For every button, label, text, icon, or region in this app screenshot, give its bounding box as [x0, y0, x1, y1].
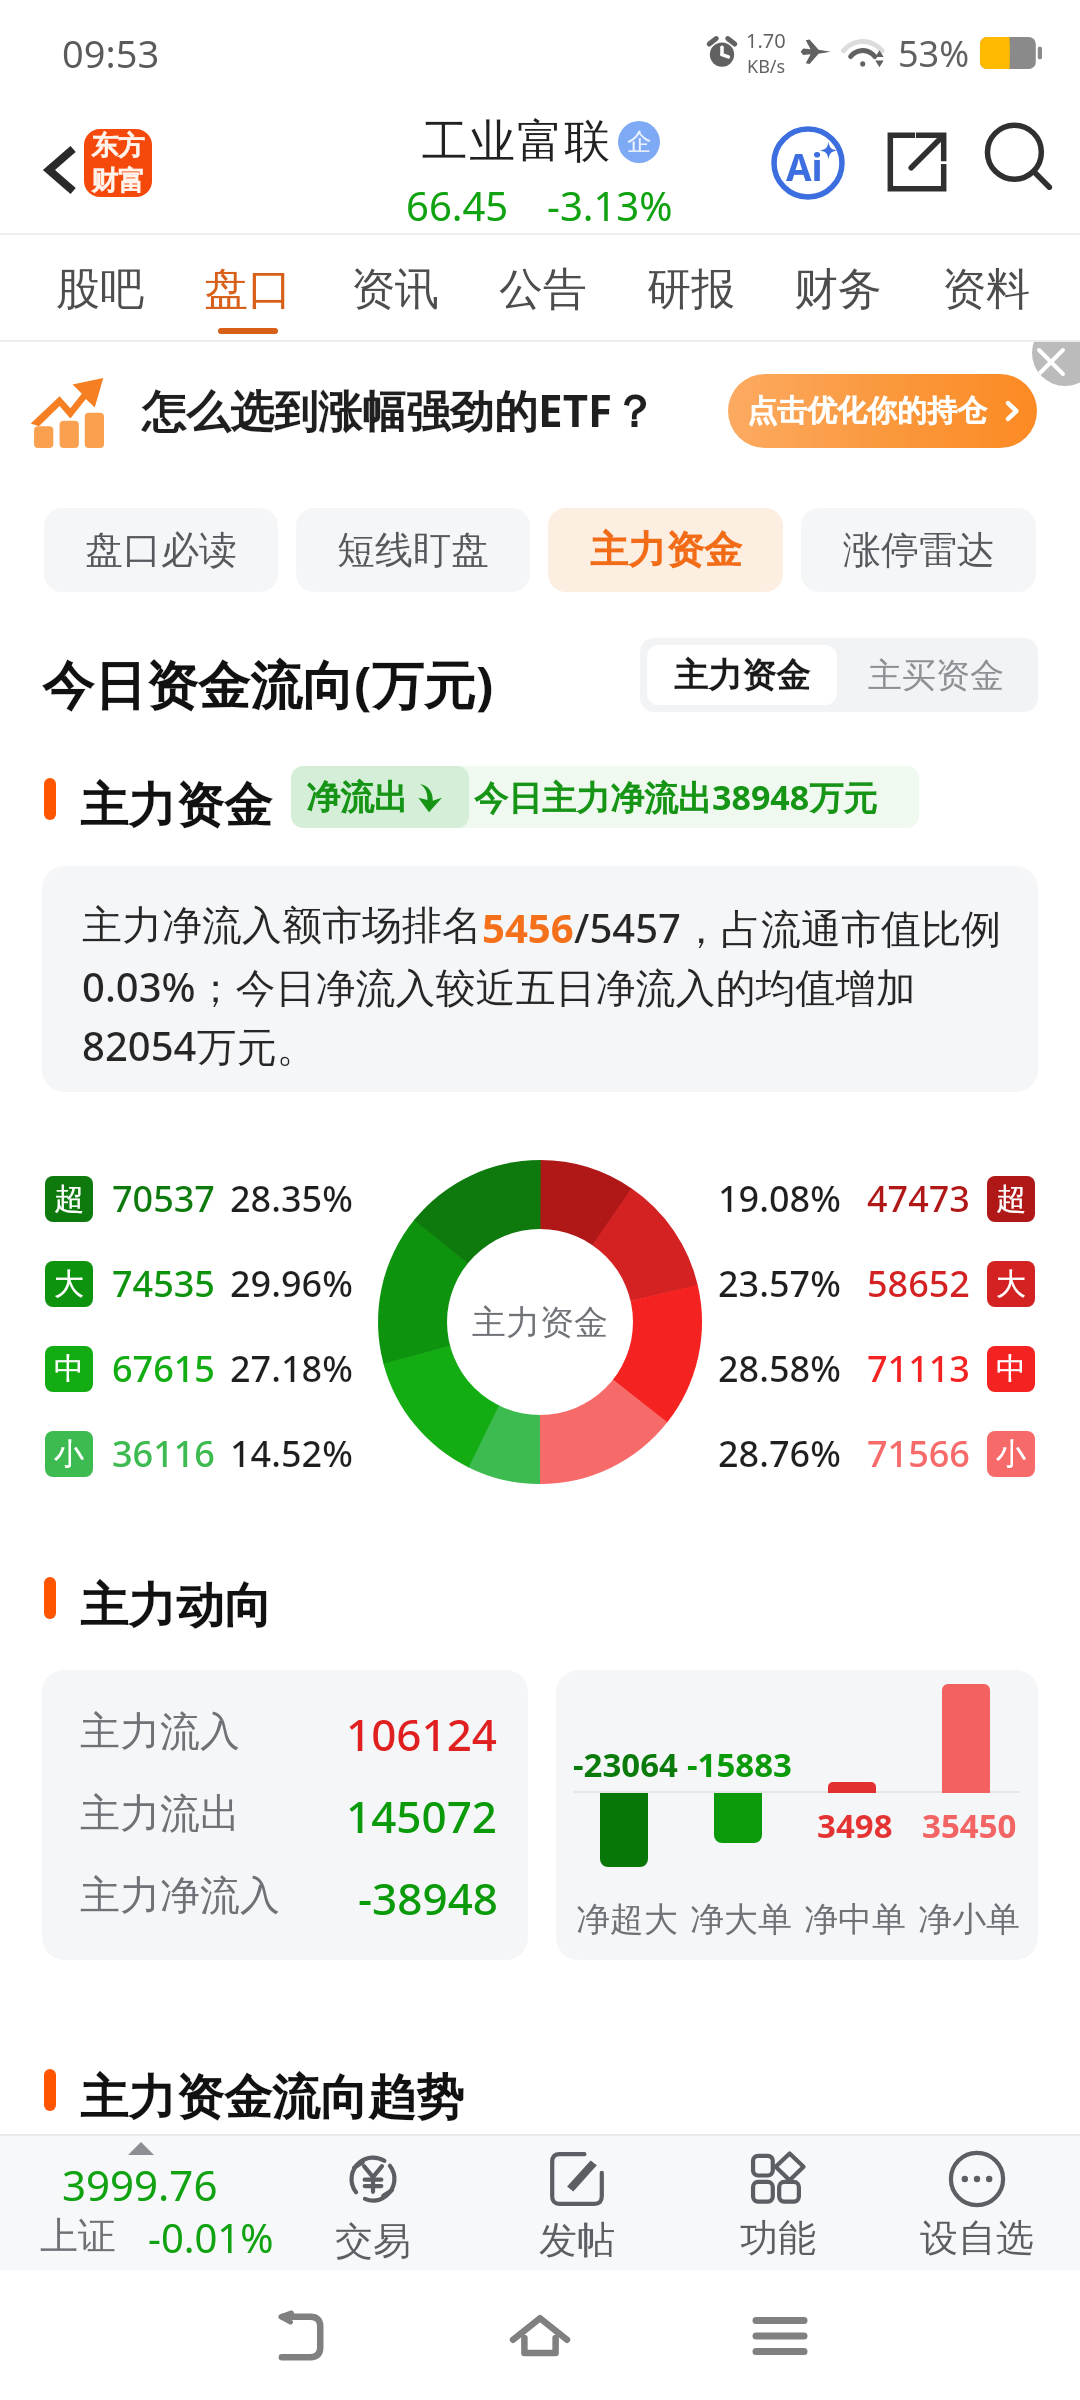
staticText: 大 — [54, 1265, 84, 1303]
button[interactable]: Home — [495, 2290, 585, 2380]
button[interactable]: 短线盯盘 — [296, 508, 530, 592]
button[interactable]: 研报 — [647, 244, 735, 351]
staticText: 71566 — [867, 1429, 970, 1478]
button[interactable]: Close — [1032, 342, 1080, 386]
staticText: 小 — [996, 1435, 1026, 1473]
staticText: -3.13% — [547, 178, 673, 232]
staticText: 82054万元。 — [82, 1018, 317, 1073]
button[interactable]: 股吧 — [56, 244, 144, 351]
staticText: 主力资金流向趋势 — [80, 2068, 464, 2128]
staticText: 净超大 — [576, 1898, 678, 1941]
staticText: 58652 — [867, 1259, 970, 1308]
staticText: 净大单 — [690, 1898, 792, 1941]
staticText: 106124 — [346, 1704, 498, 1764]
staticText: -23064 — [573, 1742, 678, 1787]
button[interactable]: 功能 — [694, 2134, 862, 2270]
button[interactable]: 资料 — [942, 244, 1030, 351]
staticText: 35450 — [922, 1803, 1017, 1848]
staticText: 今日资金流向(万元) — [42, 648, 494, 719]
button[interactable]: 财务 — [794, 244, 882, 351]
staticText: 主力动向 — [80, 1576, 272, 1636]
staticText: 74535 — [112, 1259, 215, 1308]
staticText: -38948 — [358, 1868, 498, 1928]
staticText: 净中单 — [804, 1898, 906, 1941]
staticText: 27.18% — [230, 1344, 353, 1393]
staticText: 主力资金 — [472, 1301, 608, 1344]
staticText: 主力流出 — [80, 1788, 240, 1838]
staticText: 28.35% — [230, 1174, 353, 1223]
staticText: 145072 — [346, 1786, 498, 1846]
button[interactable]: Back — [10, 105, 110, 235]
staticText: 47473 — [867, 1174, 970, 1223]
staticText: 功能 — [740, 2214, 816, 2262]
staticText: 0.03%；今日净流入较近五日净流入的均值增加 — [82, 959, 916, 1014]
button[interactable]: Recents — [735, 2292, 825, 2382]
staticText: 28.76% — [718, 1429, 841, 1478]
staticText: 70537 — [112, 1174, 215, 1223]
staticText: 小 — [54, 1435, 84, 1473]
staticText: 东方 — [91, 129, 145, 163]
staticText: 超 — [54, 1180, 84, 1218]
staticText: 股吧 — [56, 262, 144, 317]
button[interactable]: Search — [968, 110, 1072, 214]
button[interactable]: 点击优化你的持仓 — [728, 374, 1037, 448]
staticText: 盘口必读 — [85, 526, 237, 574]
staticText: 主买资金 — [868, 654, 1004, 697]
button[interactable]: 上证指数 — [0, 2134, 285, 2270]
button[interactable]: 交易 — [289, 2134, 457, 2270]
staticText: 工业富联 — [421, 113, 611, 171]
button[interactable]: 主力资金 — [647, 645, 837, 705]
staticText: 3498 — [817, 1803, 893, 1848]
staticText: 财务 — [794, 262, 882, 317]
staticText: 资料 — [942, 262, 1030, 317]
staticText: 盘口 — [204, 262, 292, 317]
staticText: 短线盯盘 — [337, 526, 489, 574]
staticText: 大 — [996, 1265, 1026, 1303]
staticText: 今日主力净流出38948万元 — [474, 774, 878, 820]
button[interactable]: 资讯 — [351, 244, 439, 351]
staticText: 中 — [996, 1350, 1026, 1388]
staticText: 09:53 — [62, 27, 160, 79]
button[interactable]: 发帖 — [493, 2134, 661, 2270]
staticText: 中 — [54, 1350, 84, 1388]
button[interactable]: Share — [865, 110, 969, 214]
staticText: 财富 — [91, 164, 145, 197]
staticText: 公告 — [499, 262, 587, 317]
button[interactable]: 公告 — [499, 244, 587, 351]
staticText: 主力净流入 — [80, 1870, 280, 1920]
button[interactable]: 主买资金 — [840, 645, 1032, 705]
button[interactable]: AI assistant — [754, 109, 862, 217]
staticText: 研报 — [647, 262, 735, 317]
staticText: 资讯 — [351, 262, 439, 317]
staticText: 14.52% — [230, 1429, 353, 1478]
staticText: 67615 — [112, 1344, 215, 1393]
staticText: 主力资金 — [590, 526, 742, 574]
staticText: 点击优化你的持仓 — [747, 392, 987, 430]
staticText: -0.01% — [148, 2210, 274, 2264]
staticText: KB/s — [747, 54, 786, 79]
staticText: 涨停雷达 — [843, 526, 995, 574]
staticText: 23.57% — [718, 1259, 841, 1308]
staticText: 66.45 — [406, 178, 509, 232]
staticText: 发帖 — [539, 2216, 615, 2264]
staticText: 1.70 — [746, 27, 786, 54]
staticText: 超 — [996, 1180, 1026, 1218]
button[interactable]: 主力资金 — [548, 508, 783, 592]
staticText: 36116 — [112, 1429, 215, 1478]
button[interactable]: 涨停雷达 — [801, 508, 1036, 592]
button[interactable]: 设自选 — [893, 2134, 1061, 2270]
staticText: 5456 — [482, 900, 574, 954]
staticText: 71113 — [867, 1344, 970, 1393]
button[interactable]: 东方财富 home — [84, 129, 152, 197]
staticText: 净流出 — [306, 776, 408, 819]
staticText: 主力流入 — [80, 1706, 240, 1756]
staticText: /5457，占流通市值比例 — [574, 900, 1001, 955]
staticText: 怎么选到涨幅强劲的ETF？ — [142, 380, 657, 440]
staticText: 主力资金 — [80, 776, 272, 836]
button[interactable]: Back — [257, 2292, 347, 2382]
button[interactable]: 盘口必读 — [44, 508, 278, 592]
button[interactable]: 盘口 — [204, 244, 292, 351]
staticText: 28.58% — [718, 1344, 841, 1393]
staticText: Ai — [786, 141, 823, 191]
staticText: -15883 — [687, 1742, 792, 1787]
